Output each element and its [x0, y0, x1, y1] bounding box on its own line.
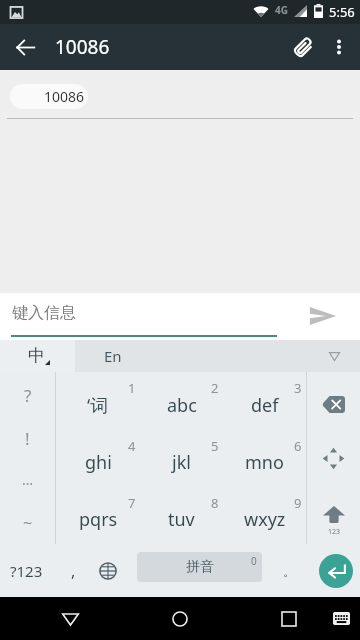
staticText: 4G	[275, 3, 288, 17]
staticText: mno	[245, 450, 284, 475]
staticText: ~	[23, 512, 33, 534]
button[interactable]: 8	[140, 487, 223, 544]
button[interactable]: Enter	[311, 548, 360, 593]
button[interactable]: Recent apps	[266, 597, 312, 640]
staticText: abc	[167, 393, 197, 418]
staticText: 7	[128, 494, 136, 512]
button[interactable]: 6	[223, 430, 306, 487]
button[interactable]: En	[75, 340, 360, 372]
staticText: ?123	[10, 561, 43, 581]
staticText: jkl	[172, 450, 191, 475]
button[interactable]: 4	[56, 430, 140, 487]
button[interactable]: Change input language	[90, 544, 126, 597]
staticText: 123	[328, 527, 341, 537]
button[interactable]: !	[0, 415, 55, 458]
button[interactable]: 2	[140, 372, 223, 430]
button[interactable]: 。	[270, 544, 308, 597]
button[interactable]: Back	[47, 597, 93, 640]
staticText: 10086	[44, 87, 85, 106]
button[interactable]: ?	[0, 372, 55, 415]
staticText: 5:56	[329, 3, 355, 21]
button[interactable]: 10086	[10, 84, 88, 109]
staticText: 拼音	[186, 558, 214, 576]
staticText: ghi	[85, 450, 112, 475]
staticText: 。	[283, 563, 296, 579]
staticText: 1	[128, 379, 136, 397]
button[interactable]: Send	[303, 296, 343, 336]
staticText: 10086	[55, 34, 110, 60]
staticText: 5	[211, 437, 219, 455]
staticText: En	[104, 346, 122, 366]
staticText: tuv	[168, 507, 195, 532]
staticText: 6	[294, 437, 302, 455]
button[interactable]: 3	[223, 372, 306, 430]
button[interactable]: Hide keyboard	[322, 344, 346, 368]
staticText: 0	[251, 554, 257, 568]
button[interactable]: ,	[54, 544, 92, 597]
button[interactable]: ?123	[0, 544, 52, 597]
button[interactable]: Home	[157, 597, 203, 640]
button[interactable]: Attach	[281, 24, 327, 70]
button[interactable]: 拼音	[137, 552, 262, 582]
button[interactable]: Move cursor	[307, 430, 360, 487]
button[interactable]: ~	[0, 501, 55, 544]
staticText: ‘词	[87, 393, 109, 418]
button[interactable]: 5	[140, 430, 223, 487]
staticText: ?	[24, 384, 32, 407]
staticText: 中	[28, 345, 45, 366]
staticText: 9	[294, 494, 302, 512]
staticText: 3	[294, 379, 302, 397]
button[interactable]: Delete	[307, 372, 360, 430]
staticText: ,	[71, 560, 76, 582]
button[interactable]: Switch keyboard	[320, 597, 360, 639]
button[interactable]: More options	[318, 26, 360, 68]
button[interactable]: 9	[223, 487, 306, 544]
button[interactable]: …	[0, 458, 55, 501]
button[interactable]: Shift	[307, 487, 360, 544]
staticText: pqrs	[79, 507, 118, 532]
staticText: 4	[128, 437, 136, 455]
staticText: 8	[211, 494, 219, 512]
staticText: 2	[211, 379, 219, 397]
button[interactable]: 7	[56, 487, 140, 544]
button[interactable]: 中	[0, 340, 75, 372]
staticText: …	[22, 470, 34, 489]
staticText: def	[251, 393, 279, 418]
staticText: wxyz	[244, 507, 286, 532]
staticText: !	[25, 427, 30, 450]
button[interactable]: 1	[56, 372, 140, 430]
staticText: 键入信息	[12, 303, 76, 323]
button[interactable]: Navigate up	[2, 24, 48, 70]
